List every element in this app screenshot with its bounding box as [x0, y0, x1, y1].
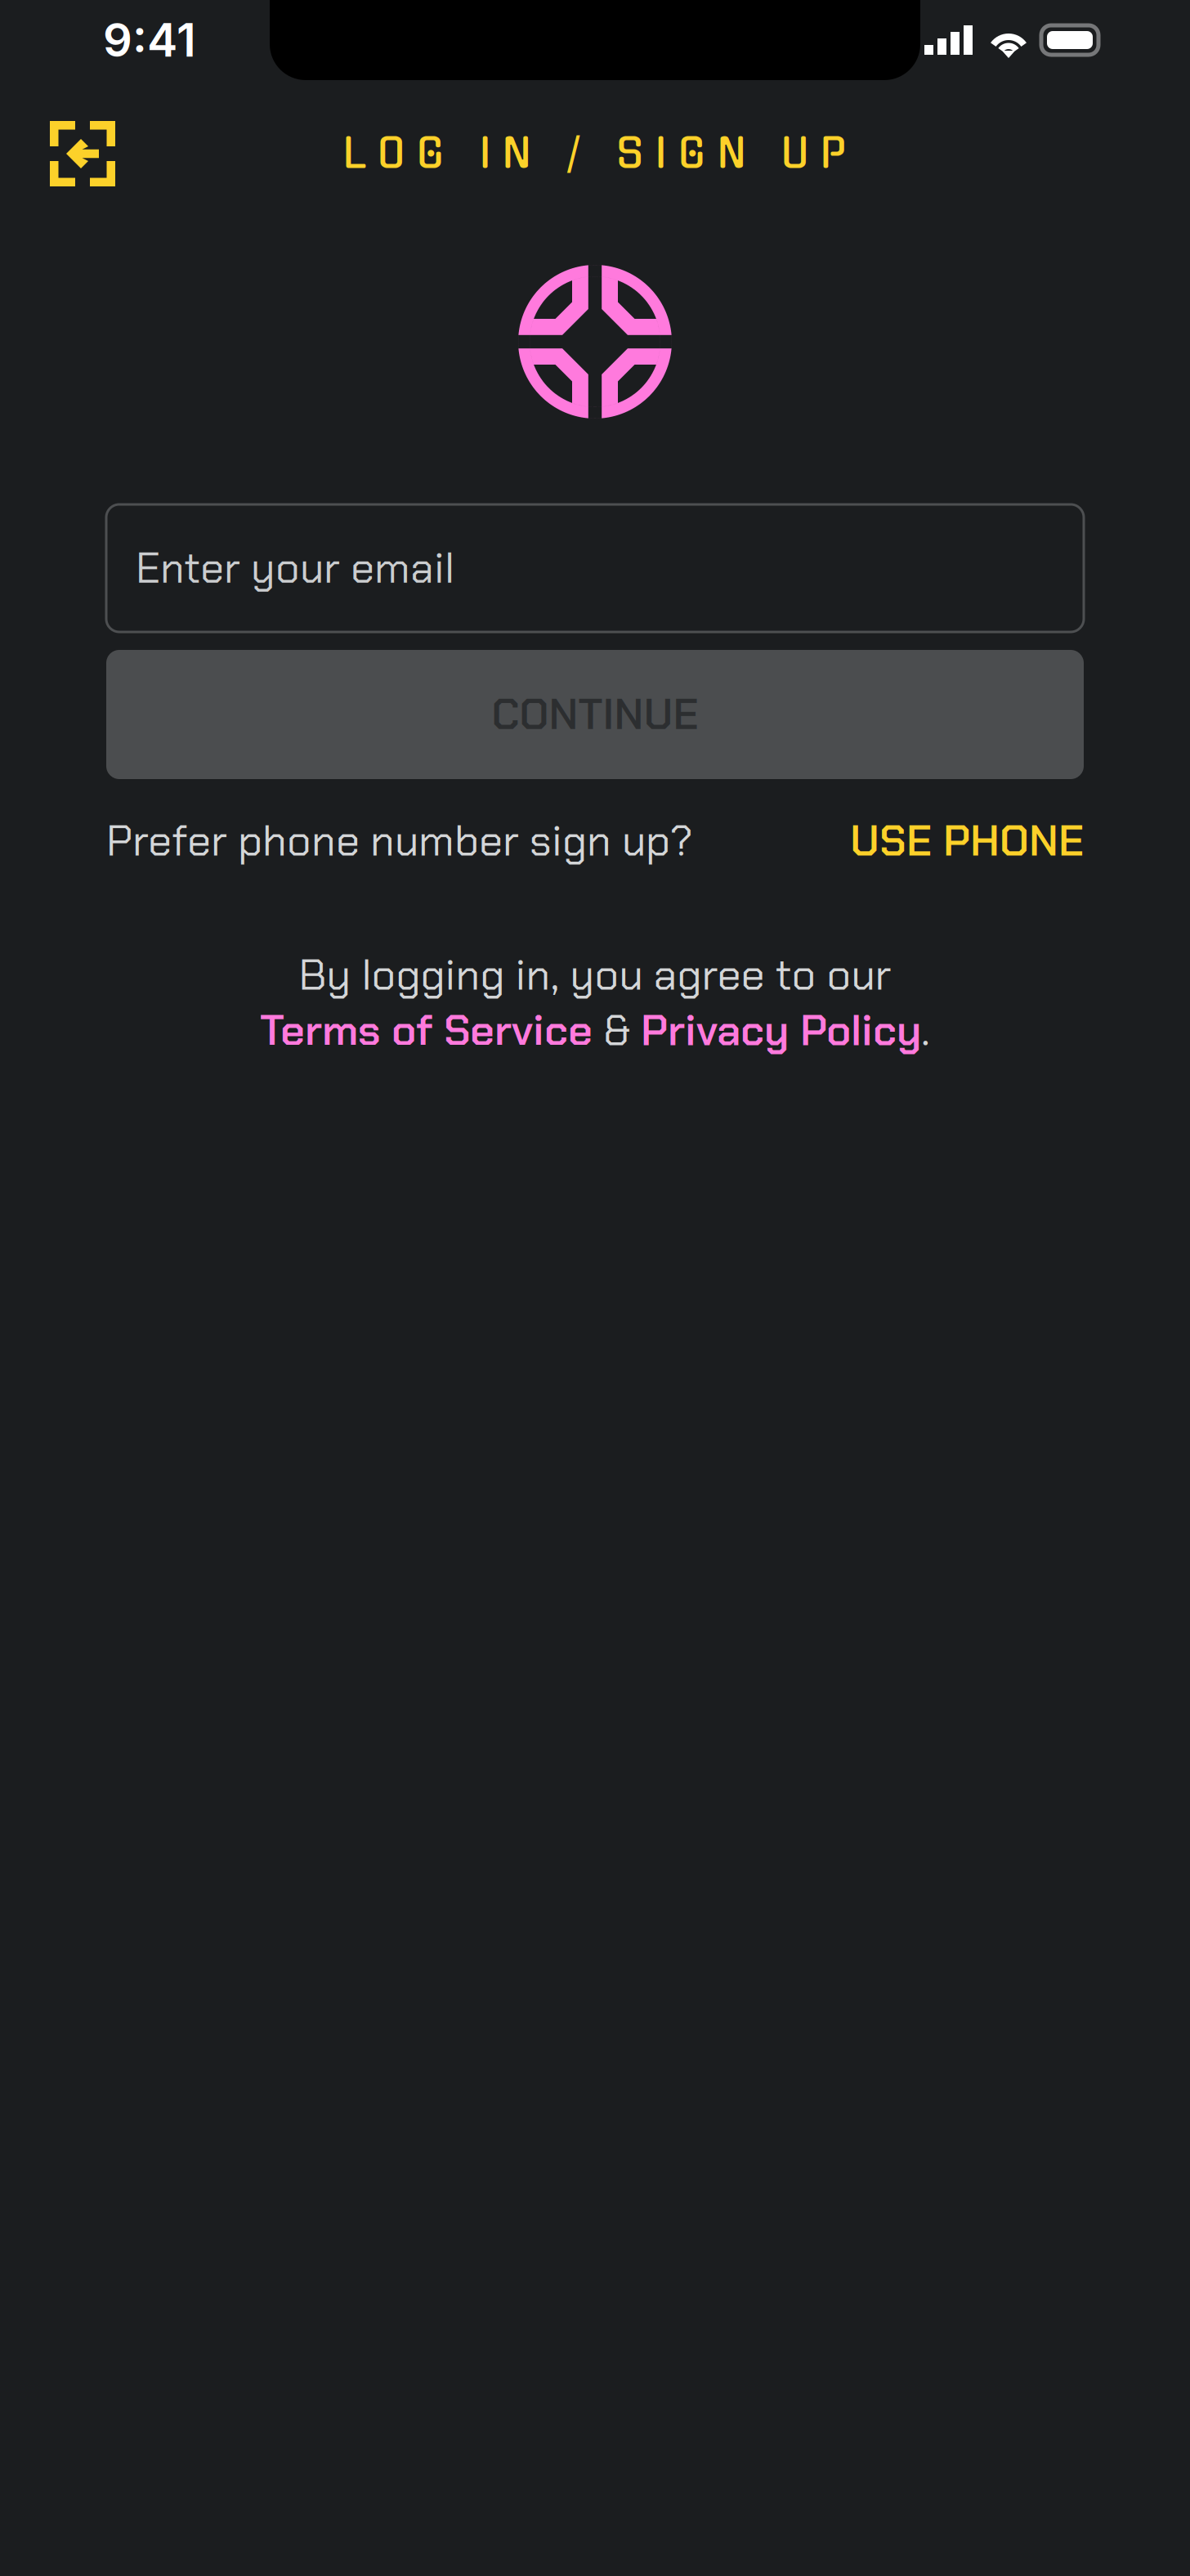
button[interactable]: Terms of Service	[260, 1003, 593, 1058]
staticText: By logging in, you agree to our	[299, 947, 891, 1003]
staticText: &	[593, 1003, 641, 1058]
staticText: Terms of Service	[260, 1003, 593, 1058]
staticText: .	[921, 1003, 930, 1058]
staticText: Prefer phone number sign up?	[106, 813, 693, 869]
button[interactable]: Back	[0, 100, 136, 208]
staticText: USE PHONE	[850, 813, 1084, 869]
button[interactable]: USE PHONE	[839, 813, 1084, 869]
staticText: Privacy Policy	[641, 1003, 921, 1058]
staticText: 9:41	[103, 12, 196, 68]
staticText: CONTINUE	[492, 687, 698, 742]
staticText: LOG IN / SIGN UP	[343, 134, 847, 174]
button[interactable]: CONTINUE	[106, 650, 1084, 779]
button[interactable]: Privacy Policy	[641, 1003, 921, 1058]
staticText: Enter your email	[136, 541, 454, 596]
